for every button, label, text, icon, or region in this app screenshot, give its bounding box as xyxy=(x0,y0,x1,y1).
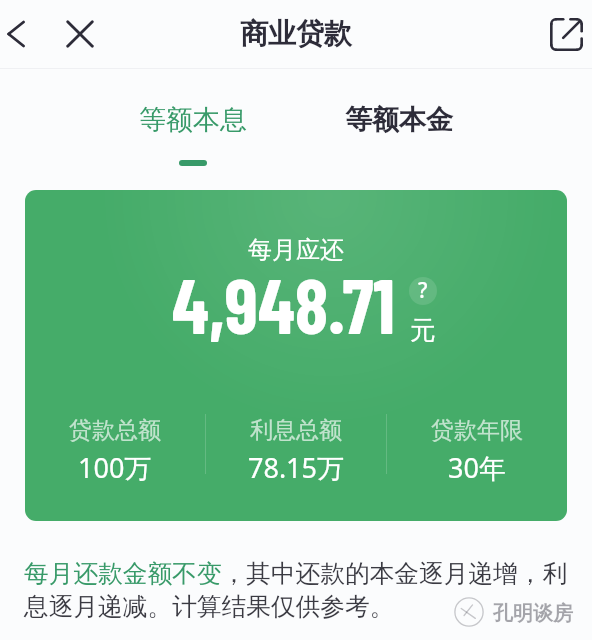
button[interactable]: Help xyxy=(409,277,437,305)
staticText: 每月还款金额不变，其中还款的本金逐月递增，利息逐月递减。计算结果仅供参考。 xyxy=(24,558,570,622)
button[interactable]: 贷款年限 xyxy=(387,416,567,486)
staticText: 贷款年限 xyxy=(431,416,523,445)
button[interactable]: Close xyxy=(53,7,107,61)
button[interactable]: 等额本金 xyxy=(296,69,502,168)
button[interactable]: Back xyxy=(0,7,44,61)
staticText: 元 xyxy=(410,314,436,347)
staticText: ? xyxy=(418,277,428,304)
staticText: 孔明谈房 xyxy=(493,601,573,626)
button[interactable]: 等额本息 xyxy=(90,69,296,168)
button[interactable]: 每月应还 xyxy=(25,190,567,521)
staticText: 4,948.71 xyxy=(172,258,395,349)
staticText: 每月应还 xyxy=(25,235,567,265)
staticText: 贷款总额 xyxy=(69,416,161,445)
button[interactable]: Open in browser xyxy=(538,6,592,62)
staticText: 100万 xyxy=(78,449,152,486)
button[interactable]: 贷款总额 xyxy=(25,416,205,486)
staticText: 30年 xyxy=(448,449,506,486)
staticText: 利息总额 xyxy=(250,416,342,445)
staticText: 78.15万 xyxy=(248,449,345,486)
button[interactable]: 利息总额 xyxy=(206,416,386,486)
staticText: 等额本息 xyxy=(139,103,247,137)
staticText: 商业贷款 xyxy=(240,16,352,51)
staticText: 等额本金 xyxy=(345,103,453,137)
